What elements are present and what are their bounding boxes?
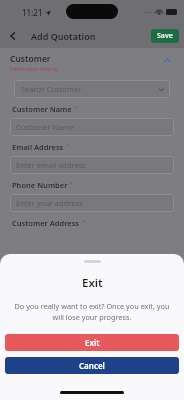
staticText: * bbox=[74, 104, 78, 112]
staticText: Exit bbox=[85, 337, 100, 348]
button[interactable]: Exit bbox=[5, 334, 179, 351]
staticText: 11:21 bbox=[22, 7, 43, 18]
staticText: Enter your address bbox=[16, 198, 83, 208]
other: Collapse bbox=[160, 53, 174, 67]
staticText: * bbox=[82, 218, 86, 226]
staticText: Information missing bbox=[10, 66, 58, 73]
button[interactable]: Enter email address bbox=[10, 156, 174, 174]
button[interactable]: Save bbox=[151, 29, 179, 43]
button[interactable]: Search Customer bbox=[14, 80, 170, 98]
staticText: Add Quotation bbox=[31, 30, 96, 42]
staticText: Customer Name bbox=[16, 122, 74, 132]
staticText: Cancel bbox=[79, 360, 105, 371]
button[interactable]: Customer Name bbox=[10, 118, 174, 136]
button[interactable]: Cancel bbox=[5, 357, 179, 374]
staticText: Email Address bbox=[12, 142, 64, 152]
staticText: Search Customer bbox=[21, 84, 82, 94]
staticText: Enter email address bbox=[16, 160, 86, 170]
staticText: Phone Number bbox=[12, 180, 68, 190]
staticText: * bbox=[70, 180, 74, 188]
staticText: Save bbox=[157, 31, 173, 41]
staticText: * bbox=[66, 142, 70, 150]
staticText: Exit bbox=[82, 275, 103, 291]
button[interactable]: Customer bbox=[10, 53, 174, 73]
staticText: Customer Name bbox=[12, 104, 72, 114]
staticText: Customer bbox=[10, 53, 51, 65]
staticText: Do you really want to exit? Once you exi… bbox=[10, 301, 174, 323]
button[interactable]: Back bbox=[4, 27, 22, 45]
staticText: Customer Address bbox=[12, 218, 80, 228]
button[interactable]: Enter your address bbox=[10, 194, 174, 212]
